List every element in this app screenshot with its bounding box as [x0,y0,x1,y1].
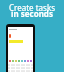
staticText: Create tasks [0,2,64,13]
staticText: in seconds [0,8,64,19]
